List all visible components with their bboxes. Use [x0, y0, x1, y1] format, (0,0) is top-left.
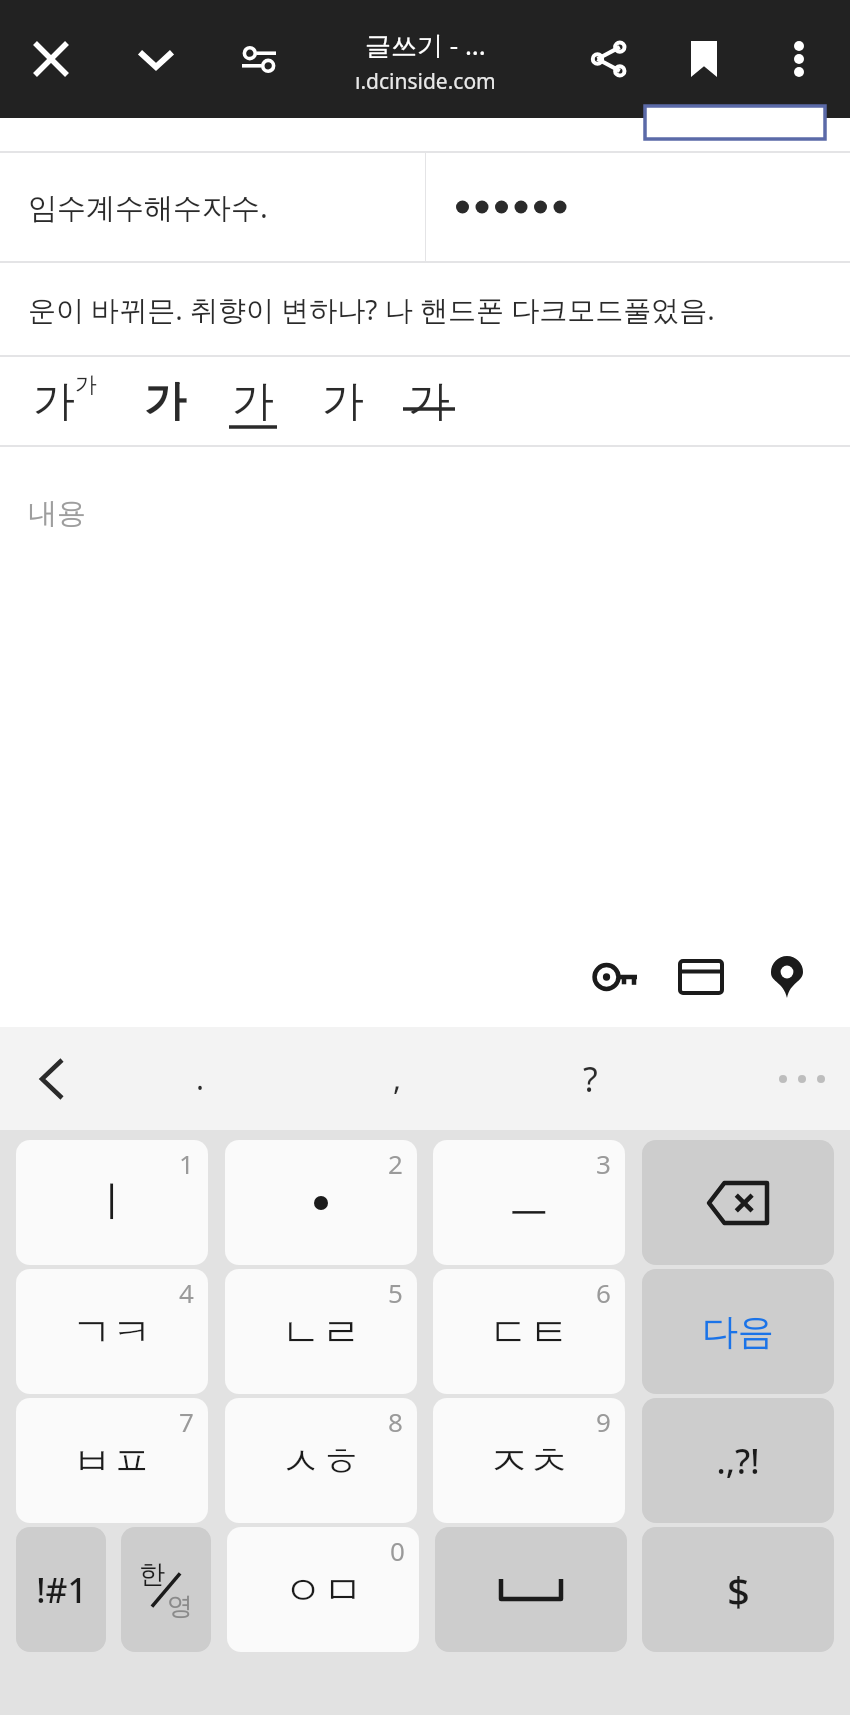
- button[interactable]: 가: [302, 357, 380, 445]
- staticText: 내용: [28, 495, 86, 532]
- button[interactable]: Delete: [642, 1140, 834, 1265]
- staticText: 가: [33, 375, 75, 428]
- button[interactable]: More options: [758, 18, 840, 100]
- staticText: .: [196, 1058, 205, 1099]
- button[interactable]: .,?!: [642, 1398, 834, 1523]
- button[interactable]: !#1: [16, 1527, 106, 1652]
- staticText: ,: [393, 1058, 402, 1099]
- staticText: 임수계수해수자수.: [28, 187, 268, 227]
- button[interactable]: Payment methods: [658, 934, 744, 1020]
- button[interactable]: ㅇㅁ: [227, 1527, 419, 1652]
- staticText: ㄱㅋ: [72, 1307, 152, 1357]
- button[interactable]: ㄴㄹ: [225, 1269, 417, 1394]
- button[interactable]: ㅈㅊ: [433, 1398, 625, 1523]
- staticText: ㅈㅊ: [489, 1436, 569, 1486]
- button[interactable]: Passwords: [572, 934, 658, 1020]
- staticText: ㄷㅌ: [489, 1307, 569, 1357]
- staticText: ı.dcinside.com: [355, 67, 496, 96]
- button[interactable]: Minimize: [115, 18, 197, 100]
- button[interactable]: ㄱㅋ: [16, 1269, 208, 1394]
- staticText: ㅡ: [508, 1176, 550, 1229]
- button[interactable]: Dot: [225, 1140, 417, 1265]
- staticText: ㅅㅎ: [281, 1436, 361, 1486]
- staticText: 가: [408, 375, 450, 428]
- button[interactable]: Site settings: [218, 18, 300, 100]
- staticText: ㄴㄹ: [281, 1307, 361, 1357]
- button[interactable]: .: [155, 1027, 245, 1130]
- staticText: 영: [167, 1590, 193, 1623]
- button[interactable]: Share: [568, 18, 650, 100]
- staticText: 운이 바뀌믄. 취향이 변하나? 나 핸드폰 다크모드풀었음.: [28, 290, 715, 328]
- button[interactable]: 다음: [642, 1269, 834, 1394]
- button[interactable]: $: [642, 1527, 834, 1652]
- staticText: 0: [390, 1533, 405, 1568]
- staticText: 4: [179, 1275, 194, 1310]
- staticText: 가: [232, 375, 274, 428]
- staticText: 2: [388, 1146, 403, 1181]
- staticText: $: [727, 1563, 750, 1617]
- staticText: ?: [583, 1056, 598, 1102]
- staticText: ㅂㅍ: [72, 1436, 152, 1486]
- staticText: 글쓰기 - ...: [365, 27, 486, 63]
- staticText: ㅇㅁ: [283, 1565, 363, 1615]
- staticText: 6: [596, 1275, 611, 1310]
- staticText: .,?!: [716, 1438, 760, 1484]
- staticText: 9: [596, 1404, 611, 1439]
- staticText: !#1: [36, 1567, 87, 1613]
- staticText: 다음: [702, 1309, 774, 1354]
- button[interactable]: ㅂㅍ: [16, 1398, 208, 1523]
- staticText: 1: [179, 1146, 194, 1181]
- staticText: 5: [388, 1275, 403, 1310]
- button[interactable]: ㄷㅌ: [433, 1269, 625, 1394]
- button[interactable]: Space: [435, 1527, 627, 1652]
- staticText: 가: [75, 371, 97, 399]
- staticText: 가: [144, 375, 186, 428]
- button[interactable]: 가: [214, 357, 292, 445]
- button[interactable]: ㅅㅎ: [225, 1398, 417, 1523]
- staticText: ㅣ: [91, 1176, 133, 1229]
- staticText: 가: [322, 375, 364, 428]
- staticText: 3: [596, 1146, 611, 1181]
- staticText: 한: [139, 1558, 165, 1591]
- button[interactable]: ㅣ: [16, 1140, 208, 1265]
- button[interactable]: Font size: [22, 357, 108, 445]
- button[interactable]: 가: [126, 357, 204, 445]
- button[interactable]: ,: [352, 1027, 442, 1130]
- button[interactable]: Korean English toggle: [121, 1527, 211, 1652]
- button[interactable]: Back: [14, 1041, 90, 1117]
- button[interactable]: ?: [545, 1027, 635, 1130]
- button[interactable]: Addresses: [744, 934, 830, 1020]
- button[interactable]: ㅡ: [433, 1140, 625, 1265]
- button[interactable]: More: [764, 1041, 840, 1117]
- button[interactable]: Bookmark: [663, 18, 745, 100]
- button[interactable]: Close: [10, 18, 92, 100]
- staticText: 7: [179, 1404, 194, 1439]
- button[interactable]: 가: [390, 357, 468, 445]
- staticText: 8: [388, 1404, 403, 1439]
